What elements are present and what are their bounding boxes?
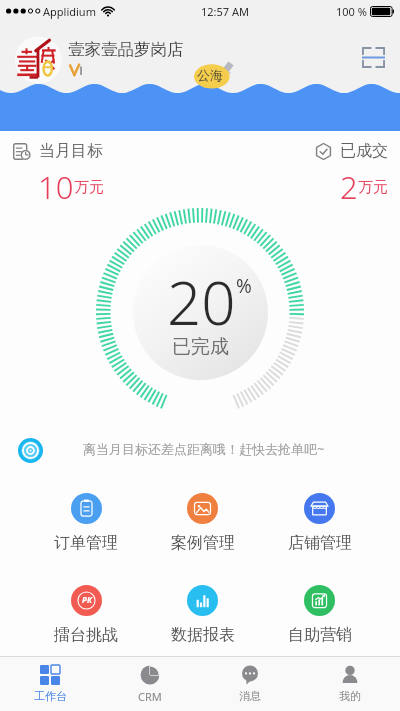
staticText: 店铺管理 bbox=[288, 533, 352, 553]
button[interactable]: 消息 bbox=[200, 657, 300, 711]
staticText: 离当月目标还差点距离哦！赶快去抢单吧~ bbox=[83, 440, 325, 458]
button[interactable]: 工作台 bbox=[0, 657, 100, 711]
staticText: 100 % bbox=[336, 4, 367, 19]
staticText: 万元 bbox=[74, 178, 104, 197]
staticText: 当月目标 bbox=[39, 141, 103, 161]
button[interactable]: Scan code bbox=[358, 42, 388, 72]
staticText: 10 bbox=[38, 166, 74, 199]
button[interactable]: CRM bbox=[100, 657, 200, 711]
staticText: 订单管理 bbox=[54, 533, 118, 553]
staticText: 消息 bbox=[239, 689, 261, 703]
staticText: 壹家壹品萝岗店 bbox=[68, 39, 184, 60]
staticText: 自助营销 bbox=[288, 625, 352, 645]
staticText: 12:57 AM bbox=[201, 4, 249, 19]
staticText: 我的 bbox=[339, 689, 361, 703]
button[interactable]: 数据报表 bbox=[144, 553, 261, 645]
staticText: 案例管理 bbox=[171, 533, 235, 553]
staticText: % bbox=[236, 273, 252, 299]
staticText: 工作台 bbox=[34, 689, 67, 703]
staticText: Applidium bbox=[43, 4, 96, 19]
staticText: CRM bbox=[138, 689, 162, 704]
button[interactable]: 我的 bbox=[300, 657, 400, 711]
staticText: PK bbox=[82, 594, 92, 605]
staticText: 公海 bbox=[197, 67, 223, 83]
staticText: 20 bbox=[167, 261, 236, 343]
staticText: 数据报表 bbox=[171, 625, 235, 645]
button[interactable]: PK bbox=[28, 553, 144, 645]
button[interactable]: 店铺管理 bbox=[261, 483, 378, 553]
button[interactable]: 自助营销 bbox=[261, 553, 378, 645]
staticText: 已完成 bbox=[172, 335, 229, 359]
staticText: 已成交 bbox=[340, 141, 388, 161]
button[interactable]: 案例管理 bbox=[144, 483, 261, 553]
staticText: 擂台挑战 bbox=[54, 625, 118, 645]
staticText: 万元 bbox=[358, 178, 388, 197]
staticText: 2 bbox=[340, 166, 358, 199]
button[interactable]: 订单管理 bbox=[28, 483, 144, 553]
